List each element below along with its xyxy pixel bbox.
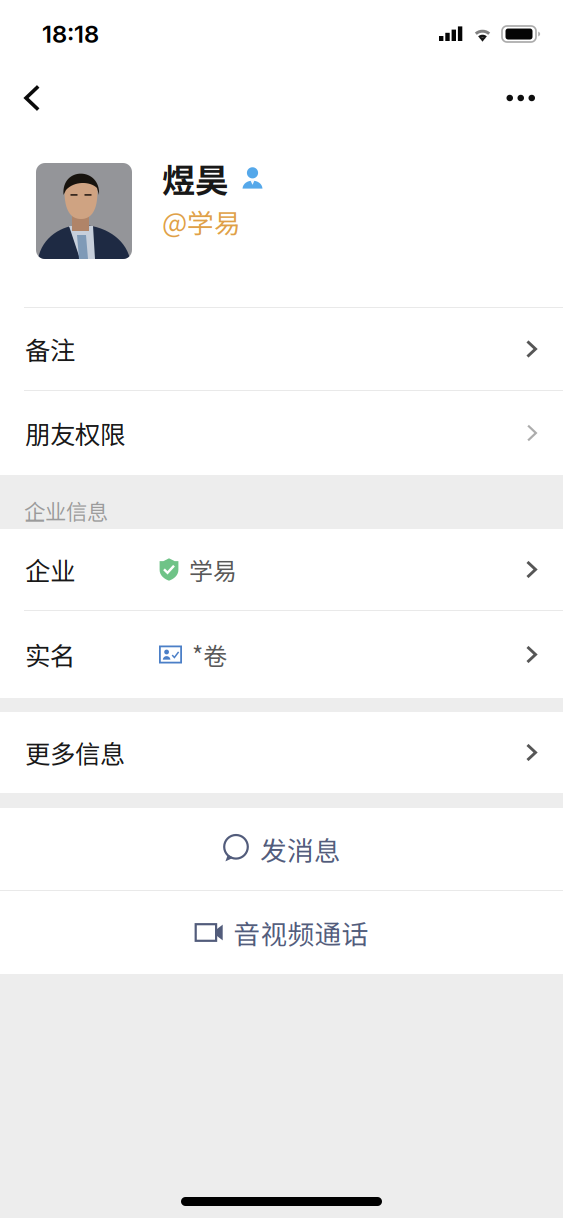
button[interactable]: Back xyxy=(0,62,66,134)
staticText: 煜昊 xyxy=(162,154,228,202)
staticText: 朋友权限 xyxy=(25,415,125,451)
staticText: 更多信息 xyxy=(25,734,125,771)
button[interactable]: More options xyxy=(482,62,563,134)
staticText: 实名 xyxy=(25,636,75,673)
button[interactable]: 更多信息 xyxy=(0,712,563,793)
staticText: *卷 xyxy=(192,637,227,672)
staticText: 音视频通话 xyxy=(233,913,368,952)
staticText: 企业信息 xyxy=(24,495,108,526)
button[interactable]: 备注 xyxy=(0,308,563,390)
button[interactable]: 实名 xyxy=(0,611,563,698)
button[interactable]: 朋友权限 xyxy=(0,391,563,475)
button[interactable]: 企业 xyxy=(0,529,563,610)
staticText: 学易 xyxy=(189,552,237,587)
staticText: 发消息 xyxy=(260,830,341,868)
staticText: 18:18 xyxy=(42,19,99,48)
button[interactable]: 音视频通话 xyxy=(0,891,563,974)
staticText: 备注 xyxy=(25,331,75,367)
button[interactable]: 煜昊 xyxy=(0,134,563,307)
button[interactable]: 发消息 xyxy=(0,808,563,890)
staticText: 企业 xyxy=(25,551,75,588)
staticText: @学易 xyxy=(162,202,241,241)
